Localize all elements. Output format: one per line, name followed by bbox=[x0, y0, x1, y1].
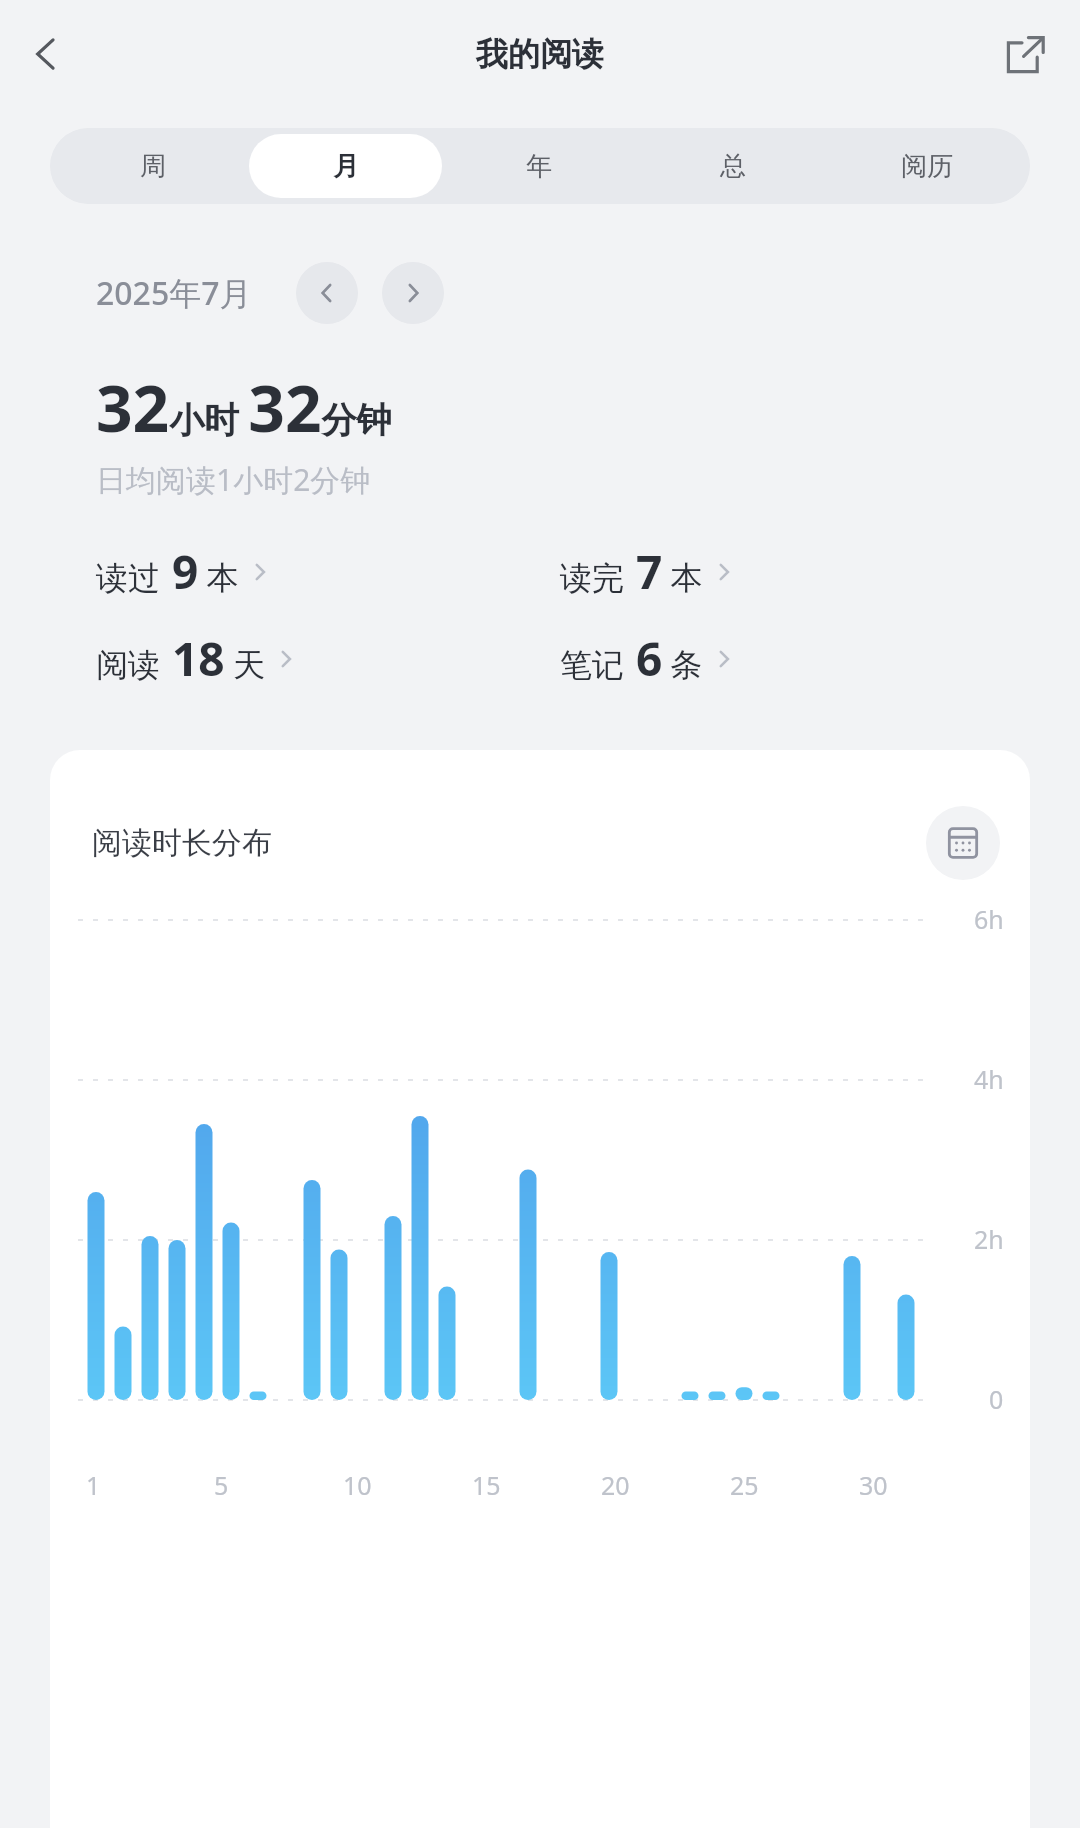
staticText: 6h bbox=[974, 902, 1004, 936]
staticText: 2025年7月 bbox=[96, 271, 252, 315]
staticText: 0 bbox=[989, 1382, 1004, 1416]
button[interactable]: Back bbox=[12, 20, 80, 88]
button[interactable]: Previous month bbox=[296, 262, 358, 324]
button[interactable]: Calendar bbox=[926, 806, 1000, 880]
button[interactable]: 阅历 bbox=[830, 134, 1024, 198]
staticText: 笔记 6 条 bbox=[560, 627, 703, 690]
staticText: 15 bbox=[472, 1468, 501, 1502]
staticText: 总 bbox=[720, 150, 746, 183]
staticText: 读完 7 本 bbox=[560, 540, 703, 603]
staticText: 日均阅读1小时2分钟 bbox=[96, 459, 371, 500]
button[interactable]: 周 bbox=[56, 134, 249, 198]
staticText: 32小时 32分钟 bbox=[96, 364, 392, 451]
staticText: 1 bbox=[86, 1468, 101, 1502]
button[interactable]: 笔记 6 条 bbox=[560, 627, 1080, 690]
staticText: 阅读时长分布 bbox=[92, 824, 272, 862]
button[interactable]: 月 bbox=[249, 134, 442, 198]
staticText: 30 bbox=[859, 1468, 888, 1502]
button[interactable]: Share bbox=[992, 20, 1060, 88]
staticText: 5 bbox=[214, 1468, 229, 1502]
staticText: 月 bbox=[333, 150, 359, 183]
button[interactable]: 年 bbox=[442, 134, 636, 198]
staticText: 10 bbox=[343, 1468, 372, 1502]
button[interactable]: 阅读 18 天 bbox=[96, 627, 540, 690]
button[interactable]: 读过 9 本 bbox=[96, 540, 540, 603]
button[interactable]: 读完 7 本 bbox=[560, 540, 1080, 603]
staticText: 4h bbox=[974, 1062, 1004, 1096]
staticText: 年 bbox=[526, 150, 552, 183]
staticText: 周 bbox=[140, 150, 166, 183]
staticText: 25 bbox=[730, 1468, 759, 1502]
staticText: 20 bbox=[601, 1468, 630, 1502]
button[interactable]: Next month bbox=[382, 262, 444, 324]
staticText: 阅读 18 天 bbox=[96, 627, 265, 690]
staticText: 2h bbox=[974, 1222, 1004, 1256]
staticText: 我的阅读 bbox=[476, 34, 604, 74]
staticText: 阅历 bbox=[901, 150, 953, 183]
staticText: 读过 9 本 bbox=[96, 540, 239, 603]
button[interactable]: 总 bbox=[636, 134, 830, 198]
